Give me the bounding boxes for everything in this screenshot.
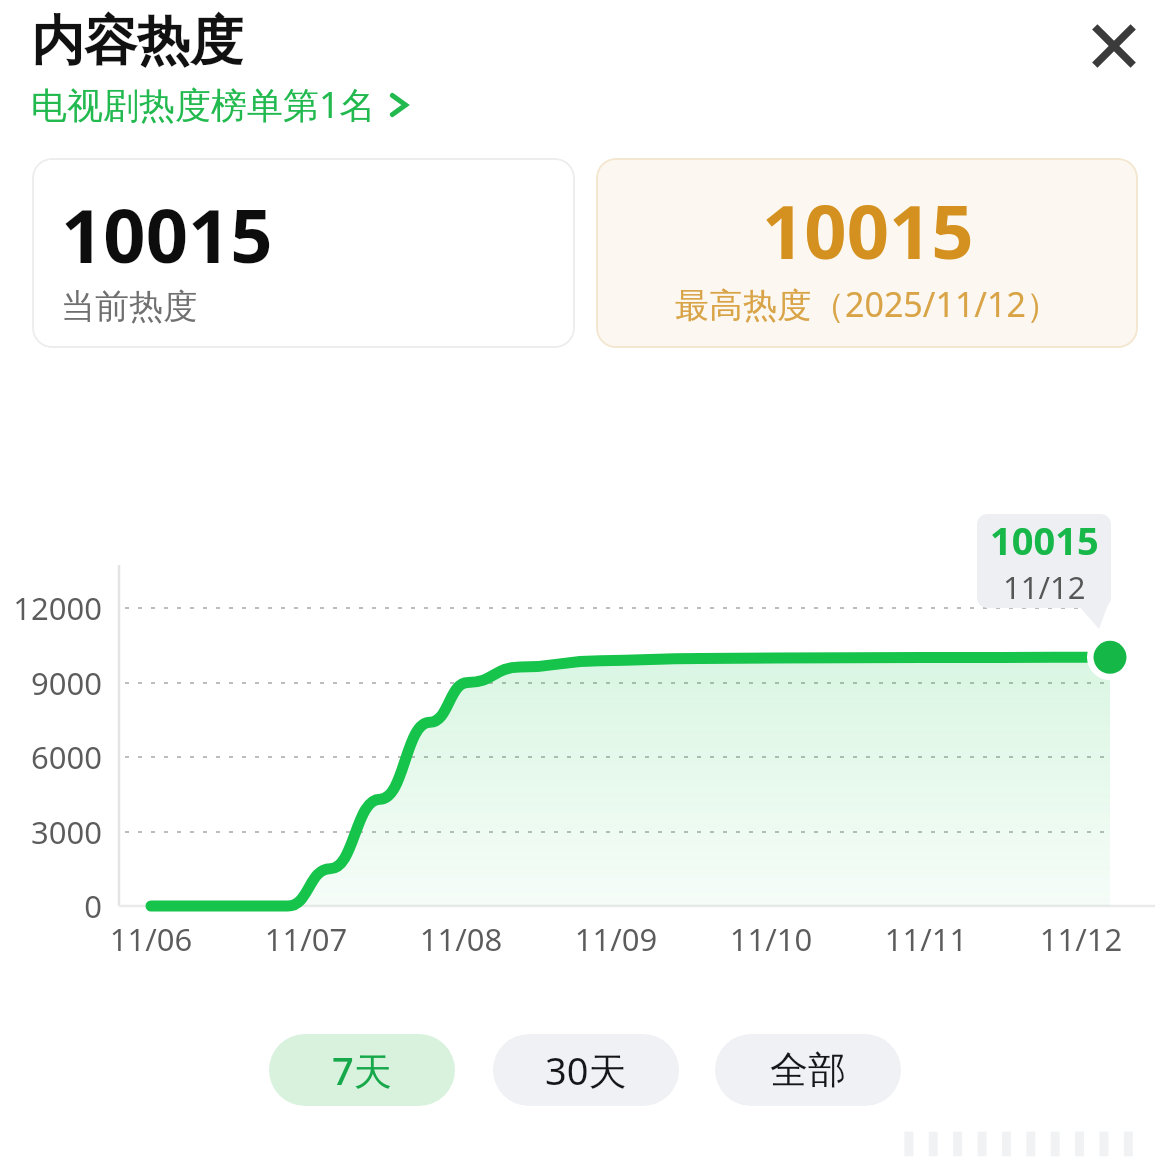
staticText: 7天 xyxy=(332,1044,392,1096)
staticText: 11/10 xyxy=(711,918,831,960)
staticText: 当前热度 xyxy=(61,285,197,328)
staticText: 11/12 xyxy=(1021,918,1141,960)
staticText: 11/12 xyxy=(1003,566,1086,608)
button[interactable]: 电视剧热度榜单第1名 xyxy=(31,80,410,129)
button[interactable]: 30天 xyxy=(493,1034,679,1106)
staticText: 9000 xyxy=(8,662,102,704)
button[interactable]: 全部 xyxy=(715,1034,901,1106)
staticText: 30天 xyxy=(545,1044,627,1096)
staticText: 全部 xyxy=(770,1046,846,1094)
staticText: 最高热度（2025/11/12） xyxy=(675,281,1060,327)
staticText: 内容热度 xyxy=(31,8,243,75)
staticText: 11/06 xyxy=(91,918,211,960)
staticText: 11/07 xyxy=(246,918,366,960)
staticText: 3000 xyxy=(8,811,102,853)
staticText: 10015 xyxy=(762,180,974,281)
staticText: 11/08 xyxy=(401,918,521,960)
staticText: 电视剧热度榜单第1名 xyxy=(31,80,376,129)
staticText: 12000 xyxy=(8,587,102,629)
staticText: 11/09 xyxy=(556,918,676,960)
button[interactable]: 10015 xyxy=(596,158,1138,348)
button[interactable]: Close xyxy=(1068,0,1160,92)
staticText: 10015 xyxy=(61,184,273,285)
button[interactable]: 10015 xyxy=(32,158,575,348)
staticText: 11/11 xyxy=(866,918,986,960)
button[interactable]: 7天 xyxy=(269,1034,455,1106)
staticText: 0 xyxy=(8,885,102,927)
staticText: 10015 xyxy=(990,514,1099,566)
staticText: 6000 xyxy=(8,736,102,778)
